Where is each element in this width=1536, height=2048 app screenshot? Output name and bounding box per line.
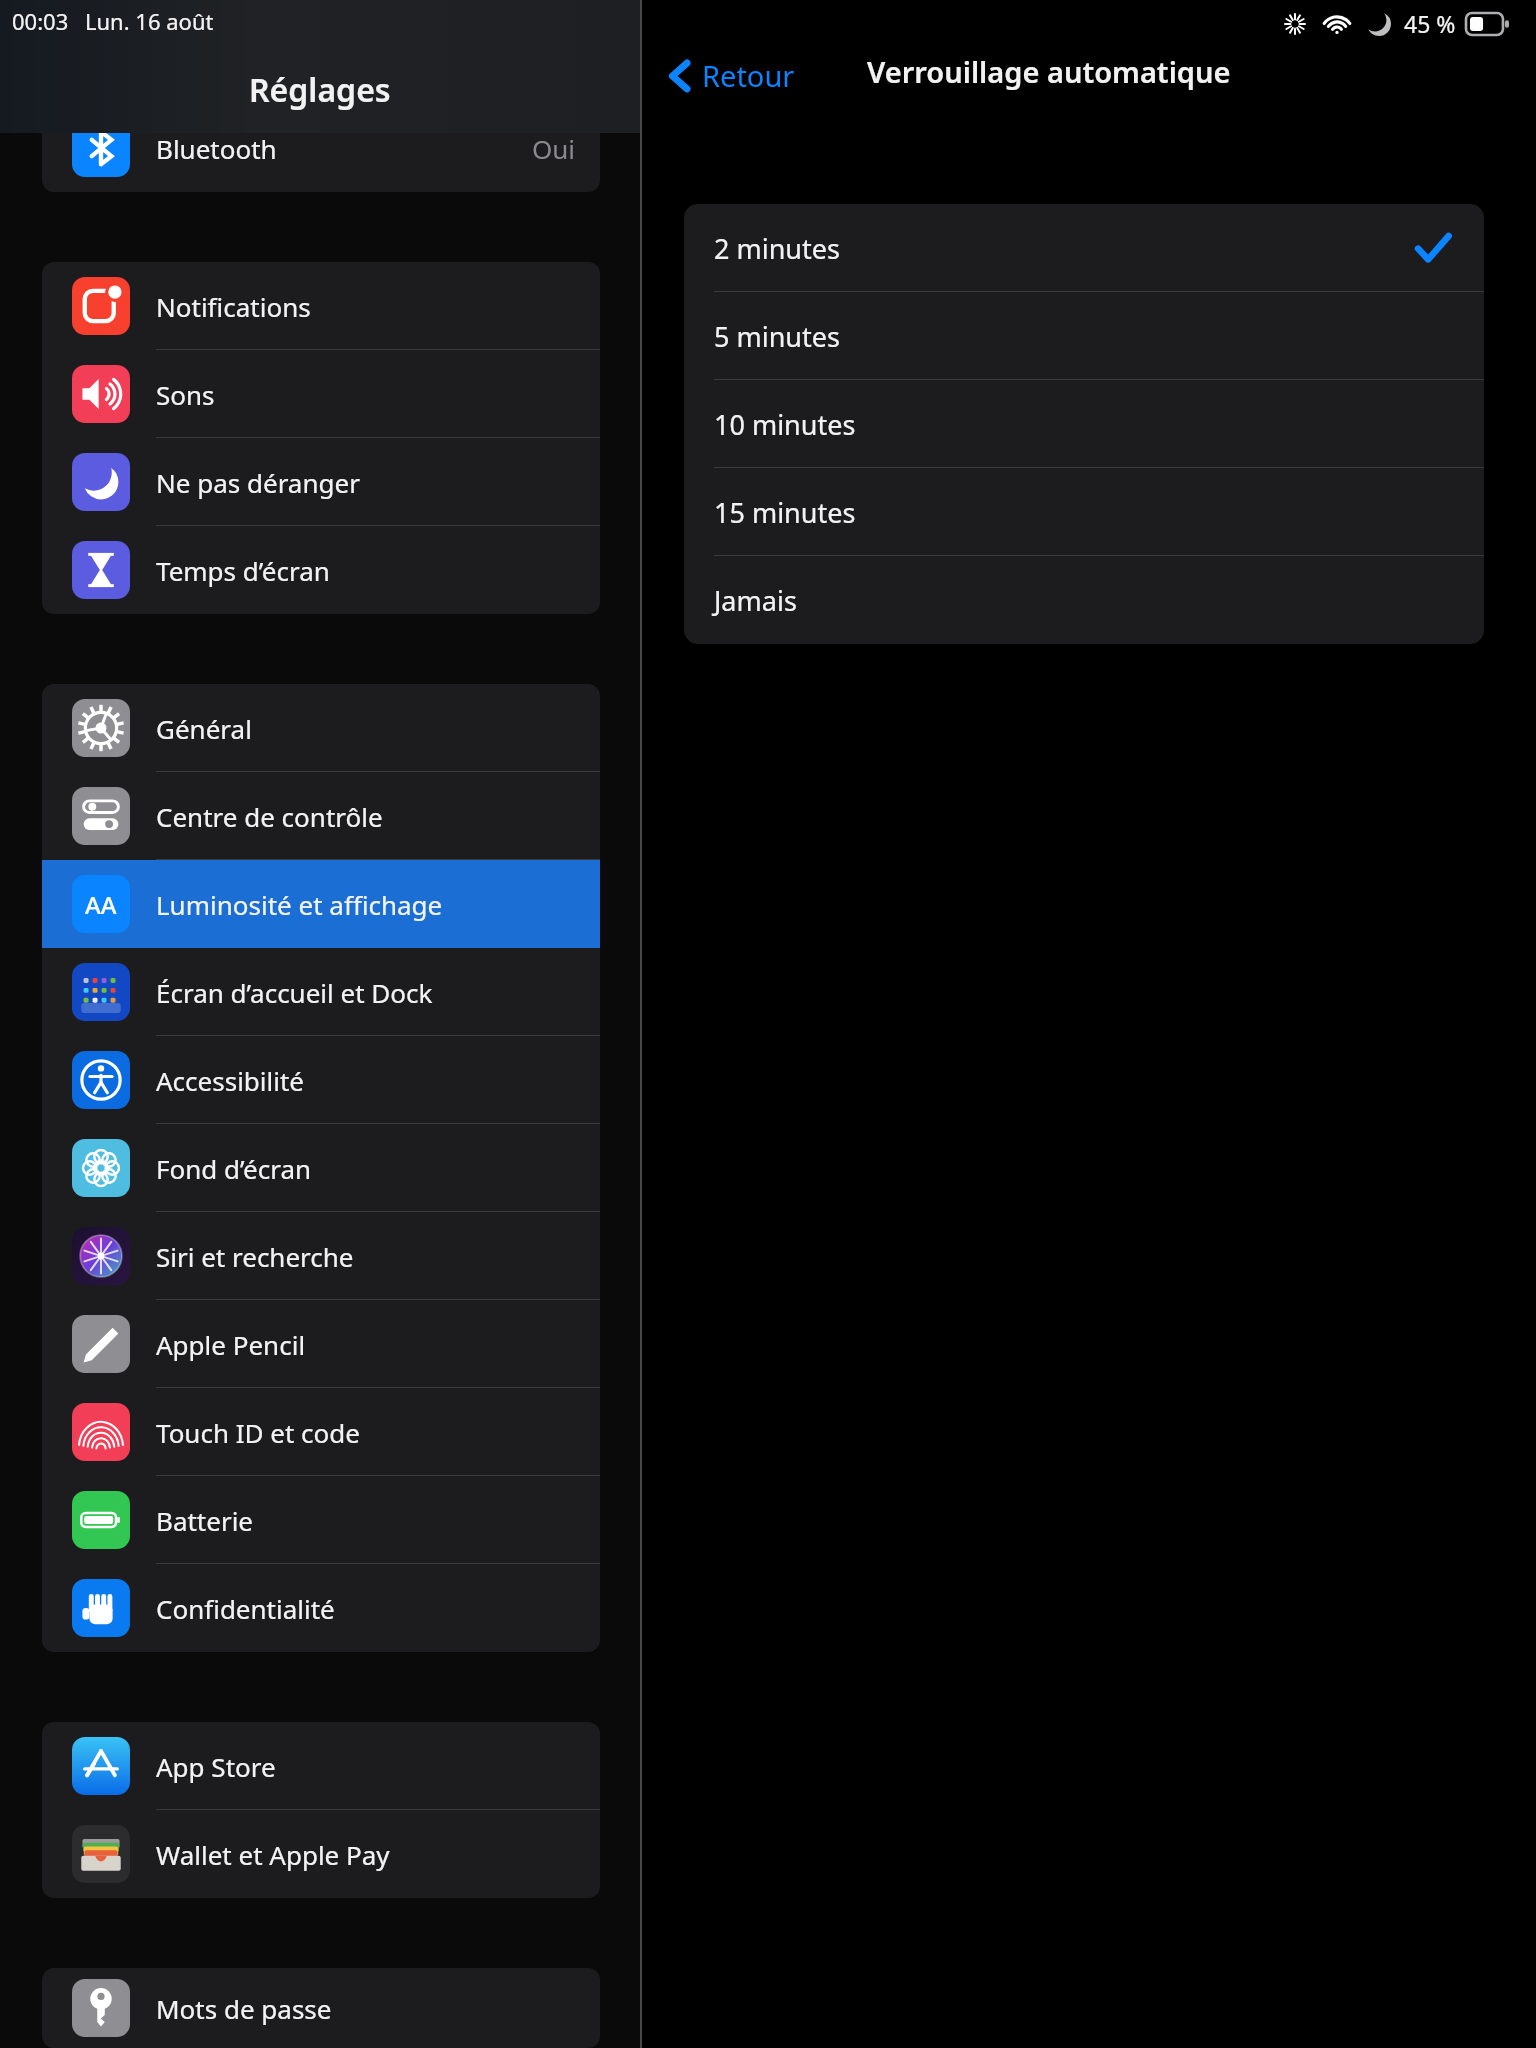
staticText: Wallet et Apple Pay	[156, 1837, 390, 1872]
button[interactable]: Fond d’écran	[42, 1124, 600, 1212]
other: Bluetooth	[72, 119, 130, 177]
staticText: Centre de contrôle	[156, 799, 383, 834]
button[interactable]: App Store	[42, 1722, 600, 1810]
button[interactable]: Siri et recherche	[42, 1212, 600, 1300]
staticText: AA	[85, 888, 117, 921]
staticText: 5 minutes	[714, 318, 840, 355]
staticText: Réglages	[249, 68, 391, 112]
button[interactable]: 15 minutes	[684, 468, 1484, 556]
staticText: Batterie	[156, 1503, 254, 1538]
other: Fond d’écran	[72, 1139, 130, 1197]
staticText: Écran d’accueil et Dock	[156, 975, 433, 1010]
other: Temps d’écran	[72, 541, 130, 599]
button[interactable]: 2 minutes	[684, 204, 1484, 292]
staticText: Temps d’écran	[156, 553, 330, 588]
other: Confidentialité	[72, 1579, 130, 1637]
button[interactable]: Apple Pencil	[42, 1300, 600, 1388]
button[interactable]: Touch ID et code	[42, 1388, 600, 1476]
staticText: Retour	[702, 56, 795, 95]
button[interactable]: Luminosité et affichage	[42, 860, 600, 948]
staticText: Général	[156, 711, 252, 746]
staticText: Verrouillage automatique	[867, 52, 1231, 91]
staticText: 10 minutes	[714, 406, 856, 443]
other: Luminosité et affichage	[72, 875, 130, 933]
other: Général	[72, 699, 130, 757]
button[interactable]: Jamais	[684, 556, 1484, 644]
staticText: Oui	[532, 131, 576, 166]
staticText: App Store	[156, 1749, 276, 1784]
staticText: 2 minutes	[714, 230, 840, 267]
staticText: Lun. 16 août	[85, 6, 214, 36]
button[interactable]: Batterie	[42, 1476, 600, 1564]
staticText: Fond d’écran	[156, 1151, 312, 1186]
other: Mots de passe	[72, 1979, 130, 2037]
staticText: Ne pas déranger	[156, 465, 360, 500]
button[interactable]: Sons	[42, 350, 600, 438]
other: Siri et recherche	[72, 1227, 130, 1285]
button[interactable]: Bluetooth	[42, 104, 600, 192]
staticText: Notifications	[156, 289, 311, 324]
button[interactable]: Confidentialité	[42, 1564, 600, 1652]
button[interactable]: Écran d’accueil et Dock	[42, 948, 600, 1036]
other: Apple Pencil	[72, 1315, 130, 1373]
staticText: Mots de passe	[156, 1991, 332, 2026]
other: Accessibilité	[72, 1051, 130, 1109]
staticText: Touch ID et code	[156, 1415, 360, 1450]
other: Sons	[72, 365, 130, 423]
staticText: Confidentialité	[156, 1591, 335, 1626]
other: Écran d’accueil et Dock	[72, 963, 130, 1021]
button[interactable]: Retour	[664, 52, 801, 99]
staticText: Sons	[156, 377, 215, 412]
other: Touch ID et code	[72, 1403, 130, 1461]
staticText: Bluetooth	[156, 131, 277, 166]
staticText: 45 %	[1404, 8, 1456, 39]
button[interactable]: Général	[42, 684, 600, 772]
button[interactable]: Temps d’écran	[42, 526, 600, 614]
other: Batterie	[72, 1491, 130, 1549]
button[interactable]: Mots de passe	[42, 1968, 600, 2048]
other: Wallet et Apple Pay	[72, 1825, 130, 1883]
button[interactable]: Centre de contrôle	[42, 772, 600, 860]
staticText: Accessibilité	[156, 1063, 305, 1098]
staticText: Siri et recherche	[156, 1239, 354, 1274]
staticText: Jamais	[714, 582, 797, 619]
staticText: 15 minutes	[714, 494, 856, 531]
button[interactable]: 5 minutes	[684, 292, 1484, 380]
button[interactable]: Ne pas déranger	[42, 438, 600, 526]
button[interactable]: Accessibilité	[42, 1036, 600, 1124]
staticText: Luminosité et affichage	[156, 887, 443, 922]
button[interactable]: Notifications	[42, 262, 600, 350]
button[interactable]: 10 minutes	[684, 380, 1484, 468]
staticText: 00:03	[12, 6, 69, 36]
staticText: Apple Pencil	[156, 1327, 306, 1362]
other: App Store	[72, 1737, 130, 1795]
other: Ne pas déranger	[72, 453, 130, 511]
other: Notifications	[72, 277, 130, 335]
other: Centre de contrôle	[72, 787, 130, 845]
button[interactable]: Wallet et Apple Pay	[42, 1810, 600, 1898]
